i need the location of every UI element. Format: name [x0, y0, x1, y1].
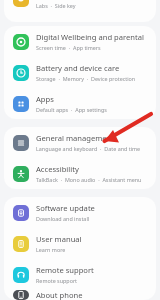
staticText: Download and install [36, 215, 90, 222]
staticText: Storage · Memory · Device protection [36, 75, 136, 82]
button[interactable]: Digital Wellbeing and parental controls [4, 26, 156, 57]
button[interactable]: Software update [4, 197, 156, 228]
staticText: Remote support [36, 277, 78, 284]
staticText: Apps [36, 94, 54, 104]
button[interactable]: User manual [4, 228, 156, 259]
staticText: General management [36, 133, 115, 143]
staticText: Software update [36, 203, 95, 213]
staticText: Default apps · App settings [36, 106, 107, 113]
staticText: Learn more [36, 246, 66, 253]
staticText: Language and keyboard · Date and time [36, 145, 141, 152]
staticText: Accessibility [36, 164, 79, 174]
staticText: Battery and device care [36, 63, 120, 73]
button[interactable]: Battery and device care [4, 57, 156, 88]
button[interactable]: Accessibility [4, 158, 156, 189]
button[interactable]: About phone [4, 290, 156, 300]
button[interactable]: Apps [4, 88, 156, 119]
staticText: Labs · Side key [36, 2, 76, 9]
staticText: User manual [36, 234, 82, 244]
button[interactable]: Remote support [4, 259, 156, 290]
staticText: Digital Wellbeing and parental controls [36, 32, 150, 42]
staticText: Remote support [36, 265, 94, 275]
staticText: Screen time · App timers [36, 44, 101, 51]
staticText: TalkBack · Mono audio · Assistant menu [36, 176, 142, 183]
staticText: About phone [36, 290, 83, 300]
button[interactable]: Bixby Routines [4, 0, 156, 10]
button[interactable]: General management [4, 127, 156, 158]
